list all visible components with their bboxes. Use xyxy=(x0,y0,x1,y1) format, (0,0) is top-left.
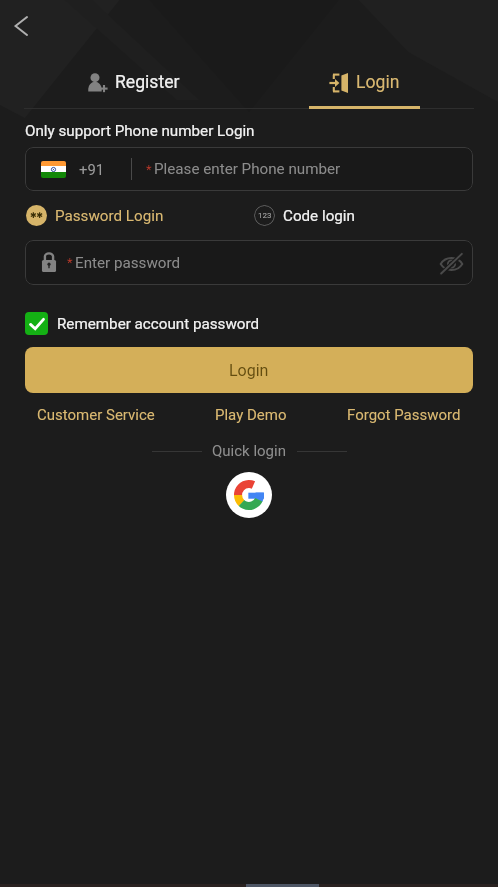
staticText: +91 xyxy=(79,161,105,178)
button[interactable]: Login xyxy=(249,62,480,102)
button[interactable]: * xyxy=(25,240,473,285)
staticText: Code login xyxy=(283,207,355,225)
staticText: Login xyxy=(229,361,269,380)
button[interactable]: Remember account password xyxy=(25,312,260,335)
button[interactable]: Play Demo xyxy=(215,406,287,424)
button[interactable]: Show password xyxy=(433,245,469,281)
button[interactable]: Forgot Password xyxy=(347,406,461,424)
button[interactable]: Register xyxy=(18,62,249,102)
staticText: Only support Phone number Login xyxy=(25,122,255,140)
staticText: * xyxy=(67,255,73,270)
button[interactable]: +91 xyxy=(25,147,473,191)
button[interactable]: Login xyxy=(25,347,473,393)
button[interactable]: Customer Service xyxy=(37,406,155,424)
staticText: 123 xyxy=(258,211,272,220)
staticText: Remember account password xyxy=(57,315,260,333)
staticText: Quick login xyxy=(212,442,286,460)
staticText: Register xyxy=(115,72,180,93)
staticText: Please enter Phone number xyxy=(154,160,341,178)
button[interactable]: 123 xyxy=(254,205,355,226)
staticText: * xyxy=(146,162,152,177)
staticText: Enter password xyxy=(75,254,181,272)
staticText: Password Login xyxy=(55,207,164,225)
staticText: Login xyxy=(356,72,400,93)
button[interactable]: Password Login xyxy=(26,205,164,226)
button[interactable]: Back xyxy=(1,6,41,46)
button[interactable]: Sign in with Google xyxy=(226,472,272,518)
